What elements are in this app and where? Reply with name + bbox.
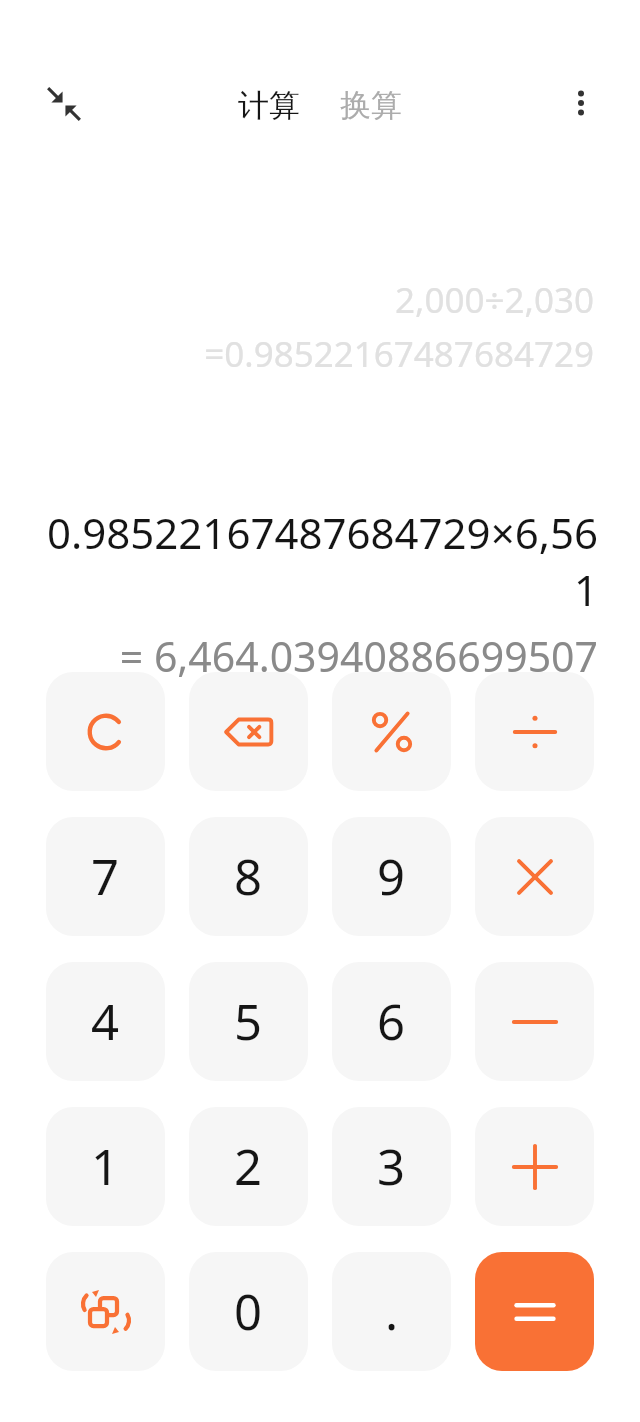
staticText: 4	[91, 988, 120, 1055]
staticText: .	[385, 1278, 399, 1345]
staticText: 1	[91, 1133, 120, 1200]
button[interactable]: 0	[189, 1252, 308, 1371]
staticText: 2,000÷2,030	[395, 276, 594, 324]
button[interactable]: Clear	[46, 672, 165, 791]
button[interactable]: 计算	[228, 80, 310, 131]
button[interactable]: Backspace	[189, 672, 308, 791]
button[interactable]: Collapse	[32, 72, 96, 136]
staticText: 2	[234, 1133, 263, 1200]
button[interactable]: Equals	[475, 1252, 594, 1371]
button[interactable]: .	[332, 1252, 451, 1371]
button[interactable]: Multiply	[475, 817, 594, 936]
staticText: 0	[234, 1278, 263, 1345]
button[interactable]: Subtract	[475, 962, 594, 1081]
button[interactable]: Percent	[332, 672, 451, 791]
button[interactable]: 2	[189, 1107, 308, 1226]
button[interactable]: 6	[332, 962, 451, 1081]
button[interactable]: 7	[46, 817, 165, 936]
button[interactable]: 换算	[330, 80, 412, 131]
staticText: 计算	[238, 86, 300, 125]
staticText: 换算	[340, 86, 402, 125]
button[interactable]: Divide	[475, 672, 594, 791]
button[interactable]: 9	[332, 817, 451, 936]
staticText: 0.98522167487684729×6,561	[42, 504, 598, 618]
button[interactable]: 8	[189, 817, 308, 936]
button[interactable]: 1	[46, 1107, 165, 1226]
button[interactable]: 2,000÷2,030	[40, 276, 594, 378]
button[interactable]: Add	[475, 1107, 594, 1226]
staticText: = 6,464.03940886699507	[119, 628, 598, 684]
button[interactable]: 4	[46, 962, 165, 1081]
staticText: 5	[234, 988, 263, 1055]
staticText: 9	[377, 843, 406, 910]
button[interactable]: Convert units	[46, 1252, 165, 1371]
button[interactable]: More options	[550, 72, 612, 134]
staticText: 8	[234, 843, 263, 910]
staticText: 6	[377, 988, 406, 1055]
button[interactable]: 3	[332, 1107, 451, 1226]
button[interactable]: 5	[189, 962, 308, 1081]
staticText: =0.98522167487684729	[204, 330, 594, 378]
staticText: 3	[377, 1133, 406, 1200]
staticText: 7	[91, 843, 120, 910]
